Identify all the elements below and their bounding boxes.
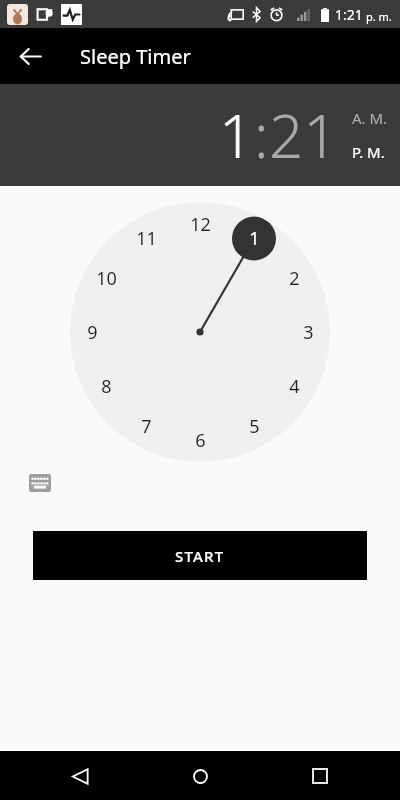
staticText: :: [254, 94, 269, 176]
staticText: 11: [136, 226, 157, 250]
button[interactable]: Recent apps: [302, 758, 338, 794]
staticText: 12: [190, 212, 211, 236]
staticText: 21: [269, 94, 338, 176]
button[interactable]: A. M.: [352, 106, 388, 130]
button[interactable]: 1: [219, 94, 254, 176]
staticText: 1:21: [335, 5, 363, 24]
staticText: 1: [219, 94, 254, 176]
staticText: 6: [195, 428, 206, 452]
staticText: START: [175, 546, 225, 566]
button[interactable]: Home: [182, 758, 218, 794]
staticText: p. m.: [366, 9, 392, 24]
staticText: 4: [289, 374, 300, 398]
staticText: P. M.: [352, 142, 385, 162]
staticText: 8: [101, 374, 112, 398]
staticText: 2: [289, 266, 300, 290]
staticText: Sleep Timer: [80, 43, 191, 70]
button[interactable]: Switch to text input: [24, 469, 56, 497]
staticText: 9: [87, 320, 98, 344]
button[interactable]: P. M.: [352, 140, 385, 164]
button[interactable]: START: [33, 531, 367, 580]
staticText: 7: [141, 414, 152, 438]
staticText: 10: [96, 266, 117, 290]
button[interactable]: 21: [269, 94, 338, 176]
button[interactable]: Back: [8, 34, 52, 78]
button[interactable]: Back: [62, 758, 98, 794]
button[interactable]: Clock hour picker: [70, 202, 330, 462]
staticText: A. M.: [352, 108, 388, 128]
staticText: 1: [249, 226, 260, 250]
staticText: 5: [249, 414, 260, 438]
staticText: 3: [303, 320, 314, 344]
